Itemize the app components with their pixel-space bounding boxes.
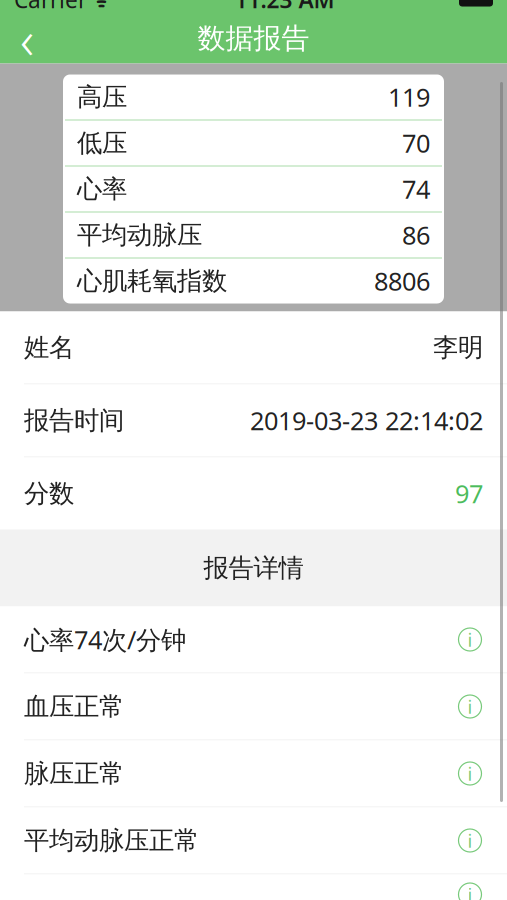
staticText: 血压正常 (24, 691, 124, 722)
staticText: 74 (402, 172, 430, 206)
button[interactable]: Back (0, 13, 54, 63)
staticText: i (467, 828, 472, 853)
staticText: 姓名 (24, 332, 74, 363)
staticText: i (467, 882, 472, 900)
staticText: 11:23 AM (234, 0, 334, 15)
staticText: 心率 (77, 173, 127, 204)
button[interactable]: 血压正常 (0, 673, 507, 740)
button[interactable]: 脉压正常 (0, 740, 507, 807)
staticText: 报告详情 (203, 552, 303, 583)
staticText: 李明 (433, 332, 483, 363)
staticText: 分数 (24, 478, 74, 509)
staticText: 心率74次/分钟 (24, 623, 186, 656)
button[interactable]: 平均动脉压正常 (0, 807, 507, 874)
staticText: 8806 (374, 264, 430, 298)
staticText: i (467, 761, 472, 786)
staticText: 119 (388, 80, 430, 114)
staticText: 高压 (77, 81, 127, 112)
staticText: 平均动脉压正常 (24, 825, 199, 856)
staticText: 数据报告 (197, 21, 309, 56)
staticText: 2019-03-23 22:14:02 (250, 404, 483, 437)
staticText: 97 (455, 477, 483, 510)
staticText: 平均动脉压 (77, 219, 202, 250)
staticText: 86 (402, 218, 430, 252)
staticText: 脉压正常 (24, 758, 124, 789)
button[interactable]: 心率74次/分钟 (0, 606, 507, 673)
staticText: 报告时间 (24, 405, 124, 436)
staticText: i (467, 694, 472, 719)
staticText: ‹ (20, 3, 34, 74)
staticText: 低压 (77, 127, 127, 158)
staticText: ᯤ (87, 0, 110, 13)
staticText: 70 (402, 126, 430, 160)
staticText: 心肌耗氧指数 (77, 265, 227, 296)
staticText: i (467, 627, 472, 652)
staticText: Carrier (14, 0, 87, 15)
